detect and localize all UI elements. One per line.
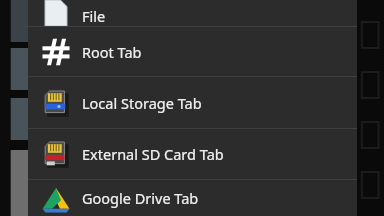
button[interactable]: Root <box>28 27 357 76</box>
staticText: Google Drive Tab <box>82 188 199 208</box>
staticText: Local Storage Tab <box>82 93 202 113</box>
staticText: Root Tab <box>82 42 142 62</box>
other: Google Drive <box>42 184 70 212</box>
other: Root <box>41 37 71 67</box>
other: External SD card <box>41 139 71 169</box>
other: File <box>45 0 67 26</box>
button[interactable]: Local storage <box>28 77 357 128</box>
button[interactable]: File <box>28 0 357 26</box>
button[interactable]: External SD card <box>28 129 357 179</box>
staticText: File <box>82 6 106 26</box>
staticText: External SD Card Tab <box>82 144 224 164</box>
other: Local storage <box>41 88 71 118</box>
button[interactable]: Google Drive <box>28 180 357 216</box>
